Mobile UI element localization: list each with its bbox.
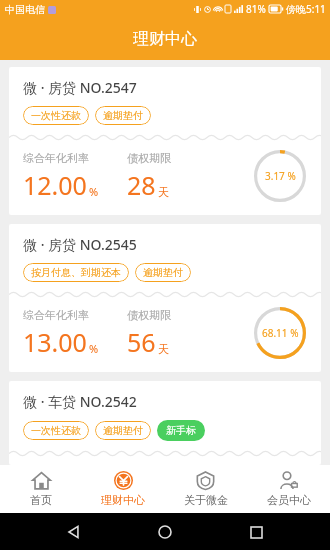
button[interactable]: 理财中心 <box>82 465 164 513</box>
staticText: 逾期垫付 <box>103 109 143 122</box>
staticText: 81% <box>246 2 266 16</box>
staticText: % <box>89 341 99 356</box>
button[interactable]: 逾期垫付 <box>95 421 151 440</box>
staticText: 按月付息、到期还本 <box>31 266 121 279</box>
staticText: 12.00 <box>23 168 87 202</box>
button[interactable]: Recent apps <box>239 515 273 549</box>
button[interactable]: 一次性还款 <box>23 106 89 125</box>
staticText: 会员中心 <box>267 493 311 507</box>
button[interactable]: 微 · 房贷 NO.2547 <box>9 67 321 215</box>
staticText: 68.11 % <box>262 326 299 340</box>
button[interactable]: 微 · 车贷 NO.2542 <box>9 381 321 465</box>
staticText: 28 <box>127 168 156 202</box>
button[interactable]: 首页 <box>0 465 82 513</box>
staticText: 理财中心 <box>133 29 197 49</box>
staticText: 综合年化利率 <box>23 151 89 165</box>
staticText: 首页 <box>30 493 52 507</box>
staticText: 一次性还款 <box>31 109 81 122</box>
staticText: 天 <box>158 342 169 356</box>
staticText: % <box>89 184 99 199</box>
staticText: 天 <box>158 185 169 199</box>
button[interactable]: 逾期垫付 <box>95 106 151 125</box>
staticText: 微 · 房贷 NO.2547 <box>23 78 137 97</box>
staticText: 新手标 <box>166 424 196 437</box>
staticText: 债权期限 <box>127 151 171 165</box>
button[interactable]: Home <box>148 515 182 549</box>
button[interactable]: 按月付息、到期还本 <box>23 263 129 282</box>
button[interactable]: 会员中心 <box>247 465 330 513</box>
staticText: 傍晚5:11 <box>286 2 326 16</box>
staticText: 逾期垫付 <box>103 424 143 437</box>
staticText: 3.17 % <box>265 169 296 183</box>
staticText: 债权期限 <box>127 308 171 322</box>
button[interactable]: 微 · 房贷 NO.2545 <box>9 224 321 372</box>
button[interactable]: Back <box>57 515 91 549</box>
staticText: 综合年化利率 <box>23 308 89 322</box>
staticText: 56 <box>127 325 156 359</box>
staticText: 关于微金 <box>184 493 228 507</box>
staticText: 一次性还款 <box>31 424 81 437</box>
staticText: 理财中心 <box>101 493 145 507</box>
staticText: 中国电信 <box>5 3 45 16</box>
staticText: 13.00 <box>23 325 87 359</box>
staticText: 微 · 房贷 NO.2545 <box>23 235 137 254</box>
staticText: 逾期垫付 <box>143 266 183 279</box>
staticText: 微 · 车贷 NO.2542 <box>23 392 137 411</box>
button[interactable]: 关于微金 <box>164 465 247 513</box>
button[interactable]: 逾期垫付 <box>135 263 191 282</box>
button[interactable]: 一次性还款 <box>23 421 89 440</box>
button[interactable]: 新手标 <box>157 420 205 441</box>
